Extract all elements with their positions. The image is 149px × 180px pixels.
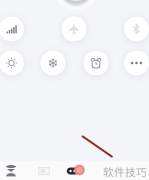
button[interactable]: Alarm [76,43,115,82]
button[interactable]: AirDrop [0,160,21,180]
button[interactable]: Bluetooth [117,9,149,48]
button[interactable]: Night Shift [33,43,72,82]
button[interactable]: Cellular Data [0,9,31,48]
button[interactable]: Screen Mirroring [33,160,54,180]
button[interactable]: Brightness [0,43,31,82]
staticText: 软件技巧 [103,164,147,179]
button[interactable]: More [117,43,149,82]
button[interactable]: Airplane Mode [54,9,93,48]
button[interactable]: Low Power Mode [61,160,84,180]
